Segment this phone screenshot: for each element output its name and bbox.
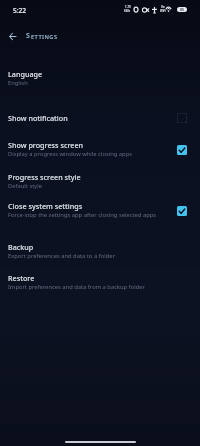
staticText: Default style — [8, 182, 43, 190]
staticText: Export preferences and data to a folder — [8, 252, 115, 260]
button[interactable]: Restore — [0, 273, 200, 295]
button[interactable]: Backup — [0, 242, 200, 264]
staticText: English — [8, 79, 28, 87]
staticText: Import preferences and data from a backu… — [8, 283, 145, 291]
staticText: Close system settings — [8, 201, 83, 211]
staticText: 5:22 — [13, 6, 27, 15]
staticText: 1.79 — [125, 5, 131, 9]
staticText: Backup — [8, 242, 34, 252]
staticText: WiFi — [160, 9, 166, 13]
staticText: KB/s — [124, 9, 131, 13]
staticText: S — [26, 31, 31, 41]
staticText: 85 — [180, 7, 185, 12]
staticText: ETTINGS — [31, 33, 58, 41]
staticText: Vo — [161, 5, 165, 9]
staticText: Show progress screen — [8, 140, 84, 150]
button[interactable]: Close system settings — [0, 201, 200, 223]
staticText: Language — [8, 69, 43, 79]
staticText: Show notification — [8, 113, 68, 123]
staticText: Progress screen style — [8, 172, 81, 182]
staticText: Display a progress window while closing … — [8, 150, 132, 158]
button[interactable]: Back — [3, 27, 21, 45]
button[interactable]: Progress screen style — [0, 172, 200, 194]
staticText: Restore — [8, 273, 35, 283]
button[interactable]: S — [26, 31, 58, 41]
button[interactable]: Language — [0, 69, 200, 91]
button[interactable]: Show notification — [0, 113, 200, 126]
button[interactable]: Show progress screen — [0, 140, 200, 162]
staticText: Force-stop the settings app after closin… — [8, 211, 157, 219]
